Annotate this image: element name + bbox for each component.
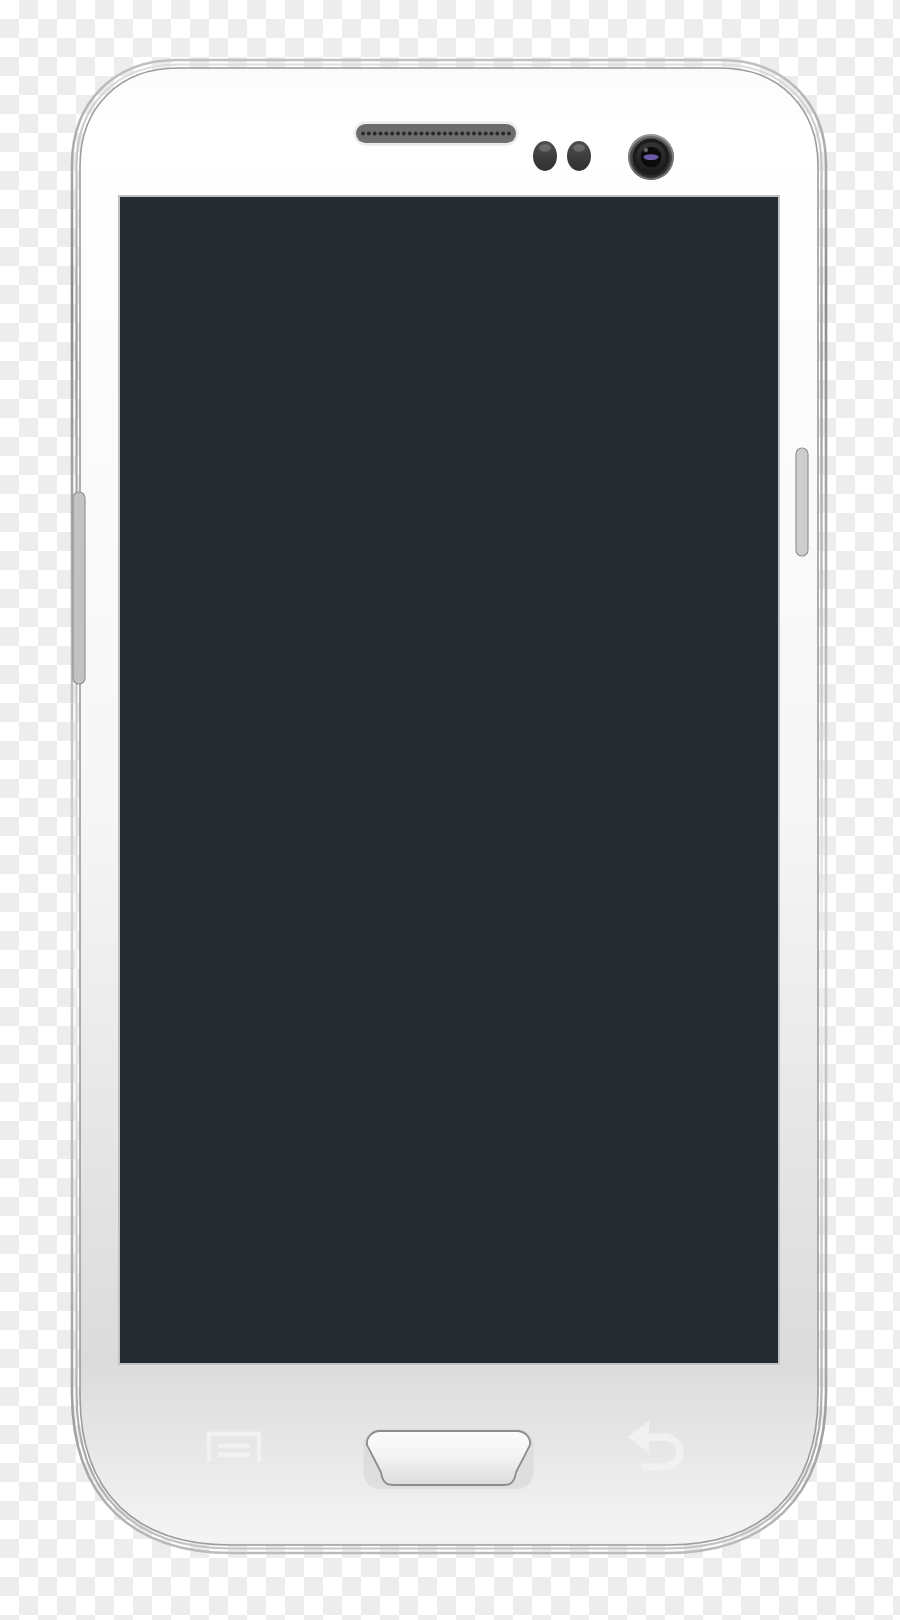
button[interactable]: Power: [792, 446, 812, 558]
button[interactable]: Back: [624, 1418, 700, 1474]
button[interactable]: Volume: [70, 490, 90, 686]
button[interactable]: Menu: [198, 1424, 272, 1476]
button[interactable]: Home: [364, 1427, 534, 1489]
